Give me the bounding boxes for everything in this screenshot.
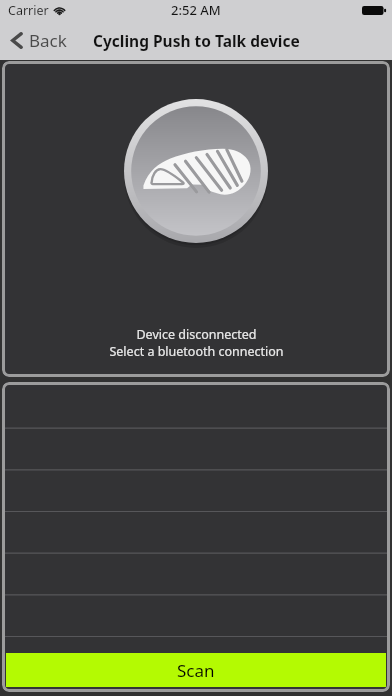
button[interactable] <box>5 469 387 511</box>
button[interactable] <box>5 511 387 553</box>
staticText: 2:52 AM <box>171 1 221 19</box>
button[interactable] <box>5 595 387 637</box>
staticText: Carrier <box>8 2 49 19</box>
button[interactable]: Back <box>9 20 392 60</box>
button[interactable] <box>5 428 387 469</box>
staticText: Device disconnected <box>136 326 257 343</box>
staticText: Scan <box>177 659 215 682</box>
button[interactable]: Scan <box>6 653 386 687</box>
staticText: Select a bluetooth connection <box>109 343 284 360</box>
staticText: Back <box>29 29 67 52</box>
staticText: Cycling Push to Talk device <box>93 30 300 51</box>
button[interactable] <box>5 553 387 595</box>
